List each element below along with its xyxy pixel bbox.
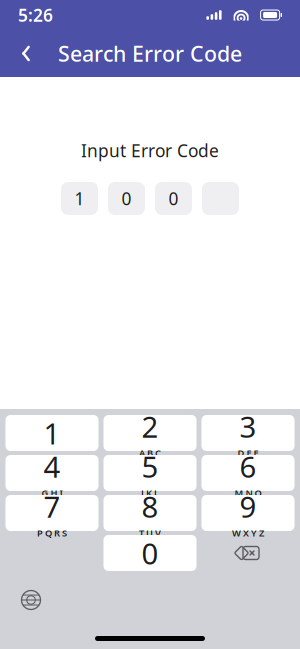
staticText: 5:26 <box>18 3 53 26</box>
button[interactable]: 0 <box>108 182 145 215</box>
staticText: 6 <box>239 447 256 486</box>
staticText: P Q R S <box>37 527 67 539</box>
staticText: D E F <box>237 447 258 459</box>
staticText: 3 <box>239 407 256 446</box>
button[interactable]: 5 <box>103 455 196 491</box>
button[interactable]: Delete <box>201 535 294 571</box>
staticText: Input Error Code <box>81 139 219 162</box>
staticText: J K L <box>141 487 159 499</box>
staticText: 5 <box>141 447 158 486</box>
staticText: A B C <box>139 447 161 459</box>
staticText: 1 <box>43 413 60 452</box>
staticText: M N O <box>234 487 261 499</box>
staticText: G H I <box>41 487 62 499</box>
staticText: T U V <box>139 527 161 539</box>
button[interactable]: 4 <box>5 455 98 491</box>
staticText: 8 <box>141 487 158 526</box>
button[interactable]: 0 <box>155 182 192 215</box>
button[interactable]: 6 <box>201 455 294 491</box>
staticText: 7 <box>43 487 60 526</box>
button[interactable]: 1 <box>61 182 98 215</box>
staticText: 4 <box>43 447 60 486</box>
button[interactable]: Next keyboard <box>14 585 48 615</box>
button[interactable]: 7 <box>5 495 98 531</box>
staticText: 1 <box>74 187 84 210</box>
button[interactable]: 8 <box>103 495 196 531</box>
staticText: Search Error Code <box>58 39 242 68</box>
button[interactable]: 1 <box>5 415 98 451</box>
staticText: 2 <box>141 407 158 446</box>
button[interactable]: 2 <box>103 415 196 451</box>
staticText: 9 <box>239 487 256 526</box>
staticText: 0 <box>121 187 131 210</box>
staticText: W X Y Z <box>232 527 264 539</box>
button[interactable]: 3 <box>201 415 294 451</box>
staticText: 0 <box>168 187 178 210</box>
button[interactable]: 0 <box>103 535 196 571</box>
button[interactable]: 9 <box>201 495 294 531</box>
button[interactable]: Back <box>6 33 46 73</box>
staticText: 0 <box>141 533 158 572</box>
